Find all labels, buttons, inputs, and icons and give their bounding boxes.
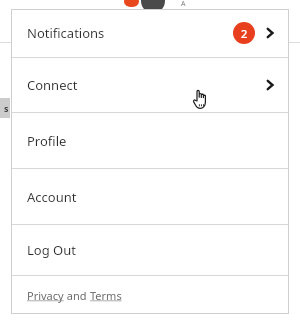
button[interactable]: Side tab [0,98,10,118]
staticText: Notifications [27,24,105,42]
staticText: and [64,288,90,303]
button[interactable]: Connect [11,58,289,112]
button[interactable]: Terms [90,288,122,303]
button[interactable]: Log Out [11,225,289,275]
staticText: A [181,0,186,9]
staticText: Privacy [27,288,64,303]
staticText: 2 [241,26,248,41]
staticText: Account [27,188,77,206]
button[interactable]: Account [11,169,289,224]
staticText: Terms [90,288,122,303]
staticText: Connect [27,76,78,94]
button[interactable]: Profile [11,113,289,168]
staticText: s [4,102,9,114]
button[interactable]: Notifications [11,9,289,57]
staticText: Log Out [27,241,76,259]
staticText: Profile [27,132,67,150]
button[interactable]: Privacy [27,288,64,303]
